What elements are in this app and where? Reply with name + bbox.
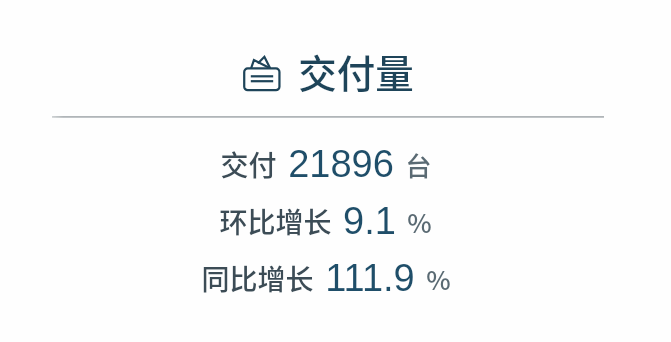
button[interactable]: 交付 — [220, 143, 432, 185]
staticText: % — [407, 203, 432, 241]
staticText: 交付量 — [298, 43, 414, 99]
staticText: 交付 — [220, 144, 277, 185]
staticText: 111.9 — [325, 257, 415, 299]
button[interactable]: Deliveries — [243, 45, 414, 101]
staticText: 台 — [405, 146, 432, 184]
button[interactable]: 环比增长 — [219, 200, 432, 242]
button[interactable]: 同比增长 — [201, 257, 451, 299]
staticText: 同比增长 — [201, 258, 314, 299]
staticText: 环比增长 — [219, 201, 332, 242]
other: Deliveries — [243, 54, 280, 92]
staticText: 21896 — [288, 143, 394, 185]
staticText: 9.1 — [343, 200, 396, 242]
staticText: % — [426, 260, 451, 298]
